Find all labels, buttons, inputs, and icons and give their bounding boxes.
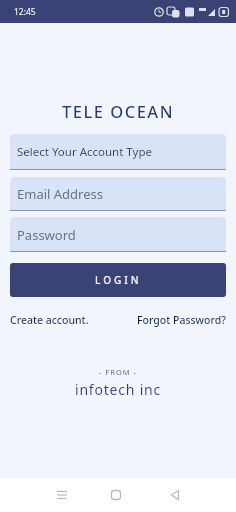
- staticText: 12:45: [14, 6, 36, 18]
- button[interactable]: Password: [10, 217, 226, 252]
- staticText: Email Address: [17, 185, 103, 203]
- button[interactable]: Create account.: [10, 313, 89, 327]
- staticText: infotech inc: [75, 380, 162, 399]
- button[interactable]: [106, 485, 126, 505]
- button[interactable]: [165, 485, 185, 505]
- staticText: LOGIN: [95, 273, 142, 287]
- button[interactable]: Select Your Account Type: [10, 134, 226, 170]
- button[interactable]: Forgot Password?: [137, 313, 226, 327]
- staticText: Password: [17, 226, 76, 244]
- button[interactable]: LOGIN: [10, 263, 226, 297]
- staticText: TELE OCEAN: [62, 100, 174, 122]
- button[interactable]: Email Address: [10, 177, 226, 211]
- staticText: - FROM -: [99, 367, 137, 377]
- button[interactable]: [52, 485, 72, 505]
- staticText: Select Your Account Type: [17, 144, 152, 160]
